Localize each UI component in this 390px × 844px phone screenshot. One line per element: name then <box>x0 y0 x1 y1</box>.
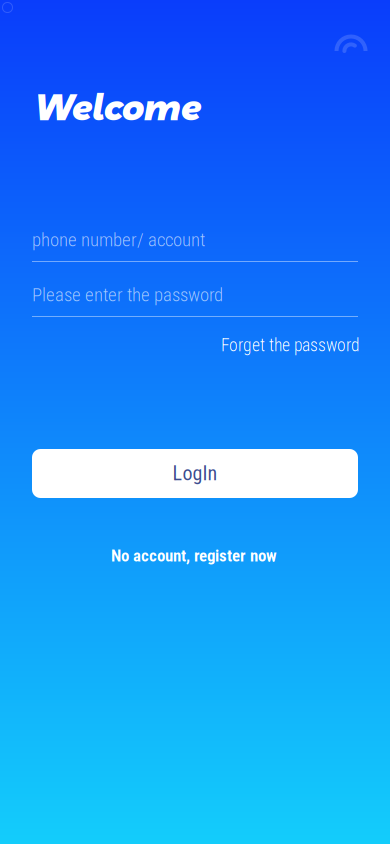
button[interactable]: Forget the password <box>221 335 360 355</box>
staticText: Please enter the password <box>32 284 223 306</box>
button[interactable]: No account, register now <box>111 546 277 566</box>
staticText: Welcome <box>35 83 201 129</box>
button[interactable]: LogIn <box>32 449 358 498</box>
staticText: LogIn <box>172 462 217 485</box>
staticText: Forget the password <box>221 335 360 355</box>
staticText: phone number/ account <box>32 229 205 251</box>
staticText: No account, register now <box>111 546 277 566</box>
